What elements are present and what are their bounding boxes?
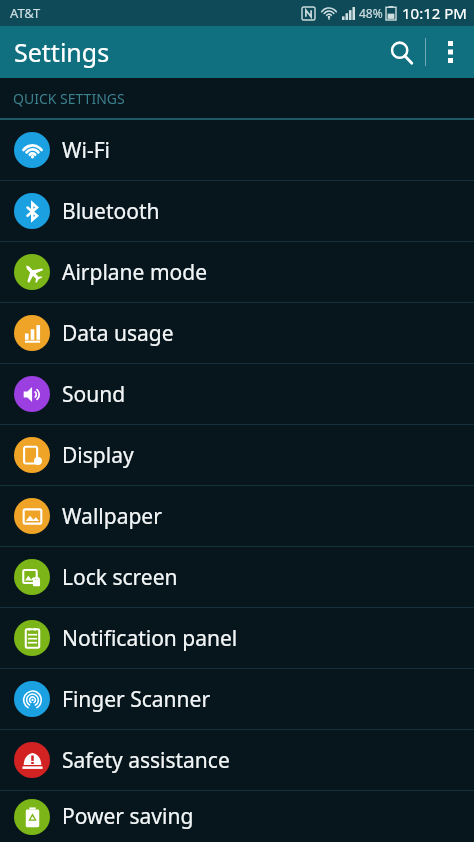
staticText: Power saving (62, 802, 194, 831)
staticText: Safety assistance (62, 746, 230, 775)
staticText: Airplane mode (62, 258, 208, 287)
staticText: QUICK SETTINGS (13, 89, 125, 108)
button[interactable]: Airplane mode (0, 242, 474, 302)
staticText: Notification panel (62, 624, 238, 653)
button[interactable]: Lock screen (0, 547, 474, 607)
staticText: Finger Scanner (62, 685, 211, 714)
button[interactable]: Wallpaper (0, 486, 474, 546)
button[interactable]: More options (426, 28, 474, 76)
button[interactable]: Bluetooth (0, 181, 474, 241)
staticText: 10:12 PM (402, 3, 467, 23)
staticText: AT&T (10, 4, 41, 22)
button[interactable]: Sound (0, 364, 474, 424)
staticText: 48% (359, 5, 383, 21)
staticText: Wi-Fi (62, 136, 111, 165)
button[interactable]: Display (0, 425, 474, 485)
staticText: Wallpaper (62, 502, 162, 531)
button[interactable]: Finger Scanner (0, 669, 474, 729)
staticText: Data usage (62, 319, 174, 348)
staticText: Bluetooth (62, 197, 160, 226)
button[interactable]: Search (377, 28, 425, 76)
staticText: Lock screen (62, 563, 178, 592)
staticText: Display (62, 441, 134, 470)
staticText: Settings (14, 35, 110, 69)
button[interactable]: Notification panel (0, 608, 474, 668)
staticText: Sound (62, 380, 126, 409)
button[interactable]: Wi-Fi (0, 120, 474, 180)
button[interactable]: Data usage (0, 303, 474, 363)
button[interactable]: Power saving (0, 791, 474, 842)
button[interactable]: Safety assistance (0, 730, 474, 790)
